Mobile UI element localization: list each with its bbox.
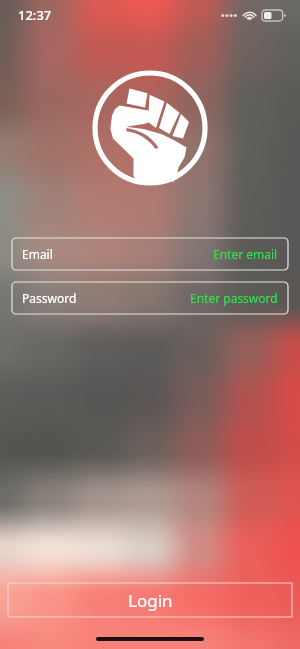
staticText: 12:37 (18, 6, 52, 24)
button[interactable]: Login (8, 583, 292, 617)
staticText: Email (22, 246, 53, 262)
staticText: Enter email (213, 246, 278, 262)
staticText: Password (22, 290, 77, 306)
staticText: Enter password (190, 290, 278, 306)
button[interactable]: Email (12, 238, 288, 270)
staticText: Login (128, 589, 173, 612)
button[interactable]: Password (12, 282, 288, 314)
